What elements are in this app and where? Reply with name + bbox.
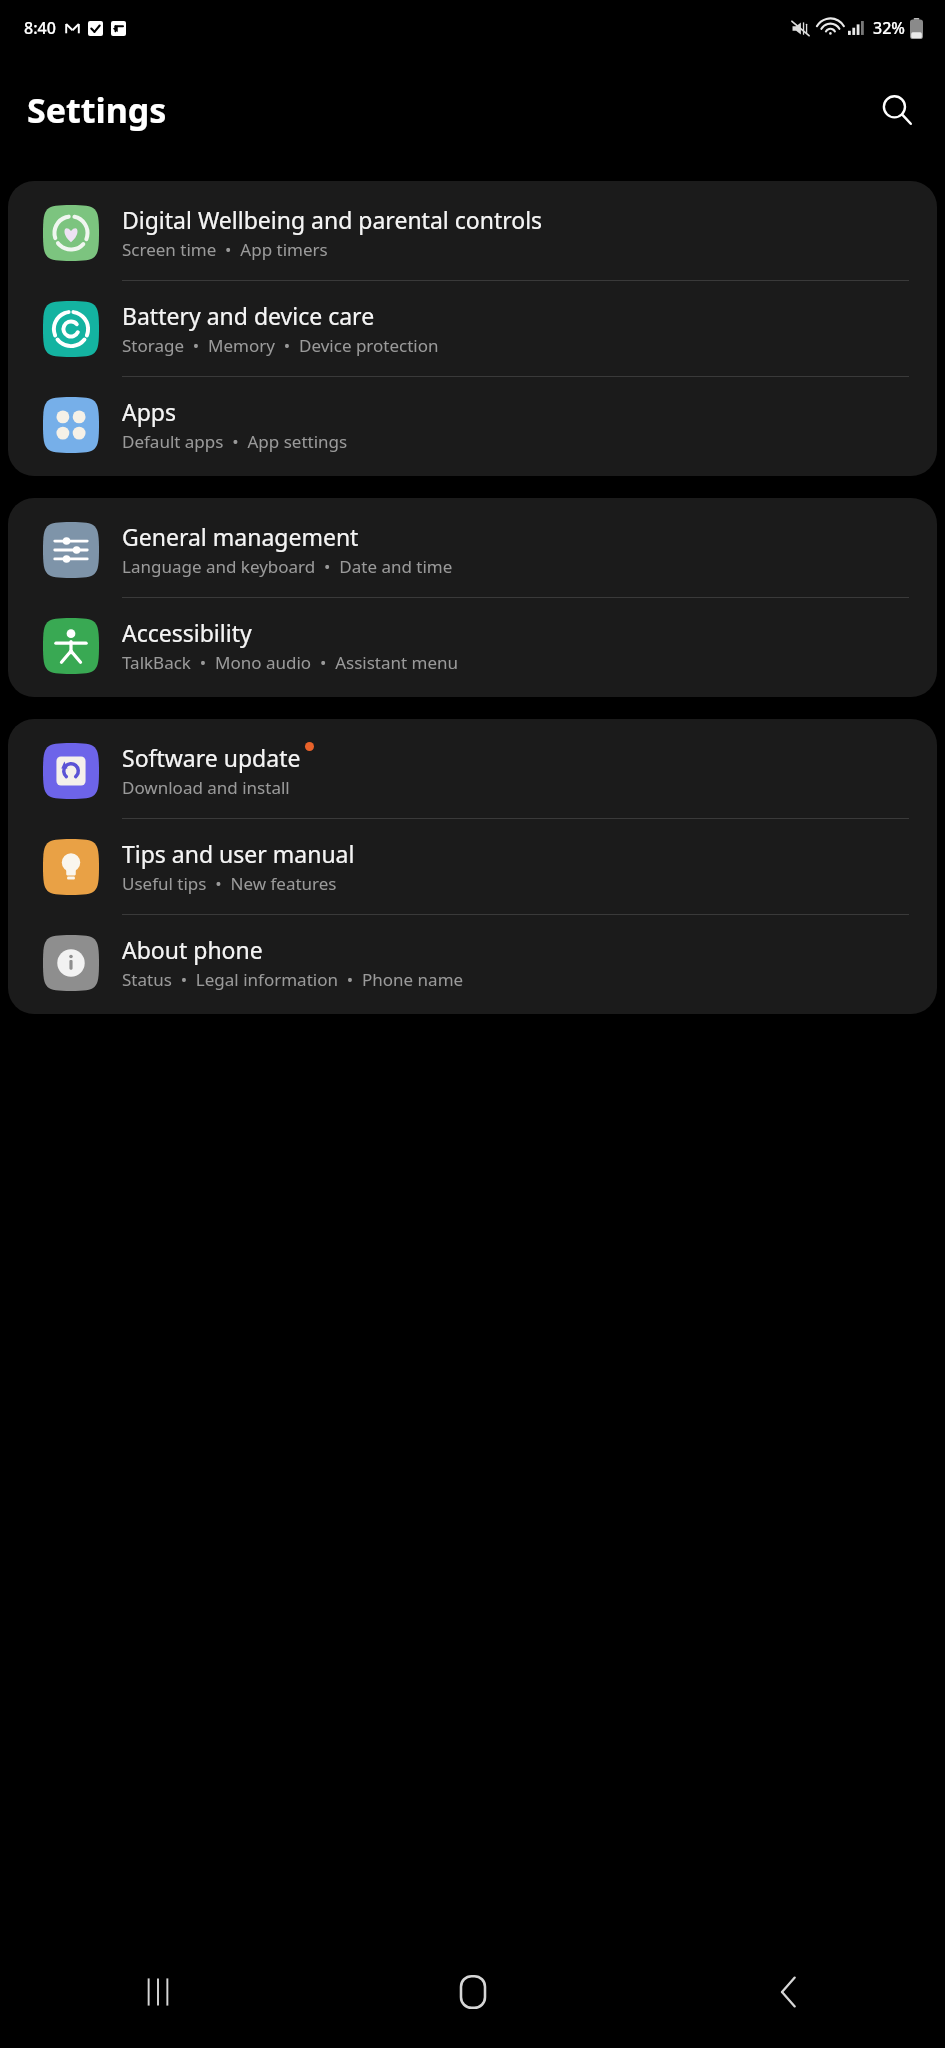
staticText: General management <box>122 521 359 552</box>
staticText: Screen time • App timers <box>122 238 328 261</box>
staticText: Tips and user manual <box>122 838 355 869</box>
staticText: About phone <box>122 934 263 965</box>
staticText: Apps <box>122 396 177 427</box>
staticText: Useful tips • New features <box>122 872 337 895</box>
button[interactable]: Recent apps <box>0 1936 315 2048</box>
button[interactable]: Battery and device care <box>8 281 937 376</box>
staticText: 32% <box>873 17 905 39</box>
staticText: Battery and device care <box>122 300 375 331</box>
staticText: Software update <box>122 742 301 773</box>
staticText: Default apps • App settings <box>122 430 348 453</box>
button[interactable]: Accessibility <box>8 598 937 693</box>
staticText: Status • Legal information • Phone name <box>122 968 464 991</box>
button[interactable]: Home <box>315 1936 630 2048</box>
button[interactable]: Software update <box>8 723 937 818</box>
button[interactable]: Tips and user manual <box>8 819 937 914</box>
staticText: Settings <box>27 87 167 133</box>
staticText: Storage • Memory • Device protection <box>122 334 439 357</box>
staticText: Accessibility <box>122 617 252 648</box>
button[interactable]: About phone <box>8 915 937 1010</box>
staticText: Digital Wellbeing and parental controls <box>122 204 543 235</box>
button[interactable]: General management <box>8 502 937 597</box>
staticText: Download and install <box>122 776 290 799</box>
button[interactable]: Apps <box>8 377 937 472</box>
staticText: Language and keyboard • Date and time <box>122 555 453 578</box>
staticText: TalkBack • Mono audio • Assistant menu <box>122 651 459 674</box>
button[interactable]: Search <box>869 82 925 138</box>
staticText: 8:40 <box>24 17 56 39</box>
button[interactable]: Digital Wellbeing and parental controls <box>8 185 937 280</box>
button[interactable]: Back <box>630 1936 945 2048</box>
